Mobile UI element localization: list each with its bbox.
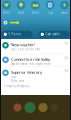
button[interactable]: Superior itinerary	[0, 66, 71, 84]
staticText: Connect to a ride today	[11, 56, 50, 62]
staticText: Send	[32, 11, 39, 14]
staticText: More	[61, 11, 68, 14]
button[interactable]: Food	[14, 1, 27, 14]
button[interactable]: Cash wallet	[38, 31, 69, 38]
button[interactable]: Ride	[0, 1, 13, 14]
staticText: Ride cost	[11, 79, 24, 83]
staticText: 7 new notifications	[3, 84, 29, 88]
staticText: Trip	[11, 75, 16, 79]
staticText: New voucher!	[11, 42, 35, 47]
staticText: 1h	[64, 42, 68, 45]
button[interactable]: Connect to a ride today	[0, 53, 71, 66]
button[interactable]: Send	[29, 1, 42, 14]
staticText: 3h	[64, 69, 68, 73]
staticText: Tap for more info right here	[11, 62, 51, 66]
staticText: 5 Points	[8, 32, 20, 36]
staticText: Ride	[3, 11, 10, 14]
button[interactable]: 5 Points	[1, 31, 32, 38]
staticText: Food	[17, 11, 24, 14]
button[interactable]: Pay	[43, 1, 56, 14]
button[interactable]: More	[58, 1, 71, 14]
button[interactable]: New voucher!	[0, 39, 71, 53]
staticText: 2h	[64, 56, 68, 60]
staticText: Superior itinerary	[11, 69, 42, 75]
staticText: Cash wallet	[45, 32, 60, 36]
staticText: Use it till 09:00 PM	[11, 48, 39, 51]
staticText: Pay	[48, 11, 52, 14]
